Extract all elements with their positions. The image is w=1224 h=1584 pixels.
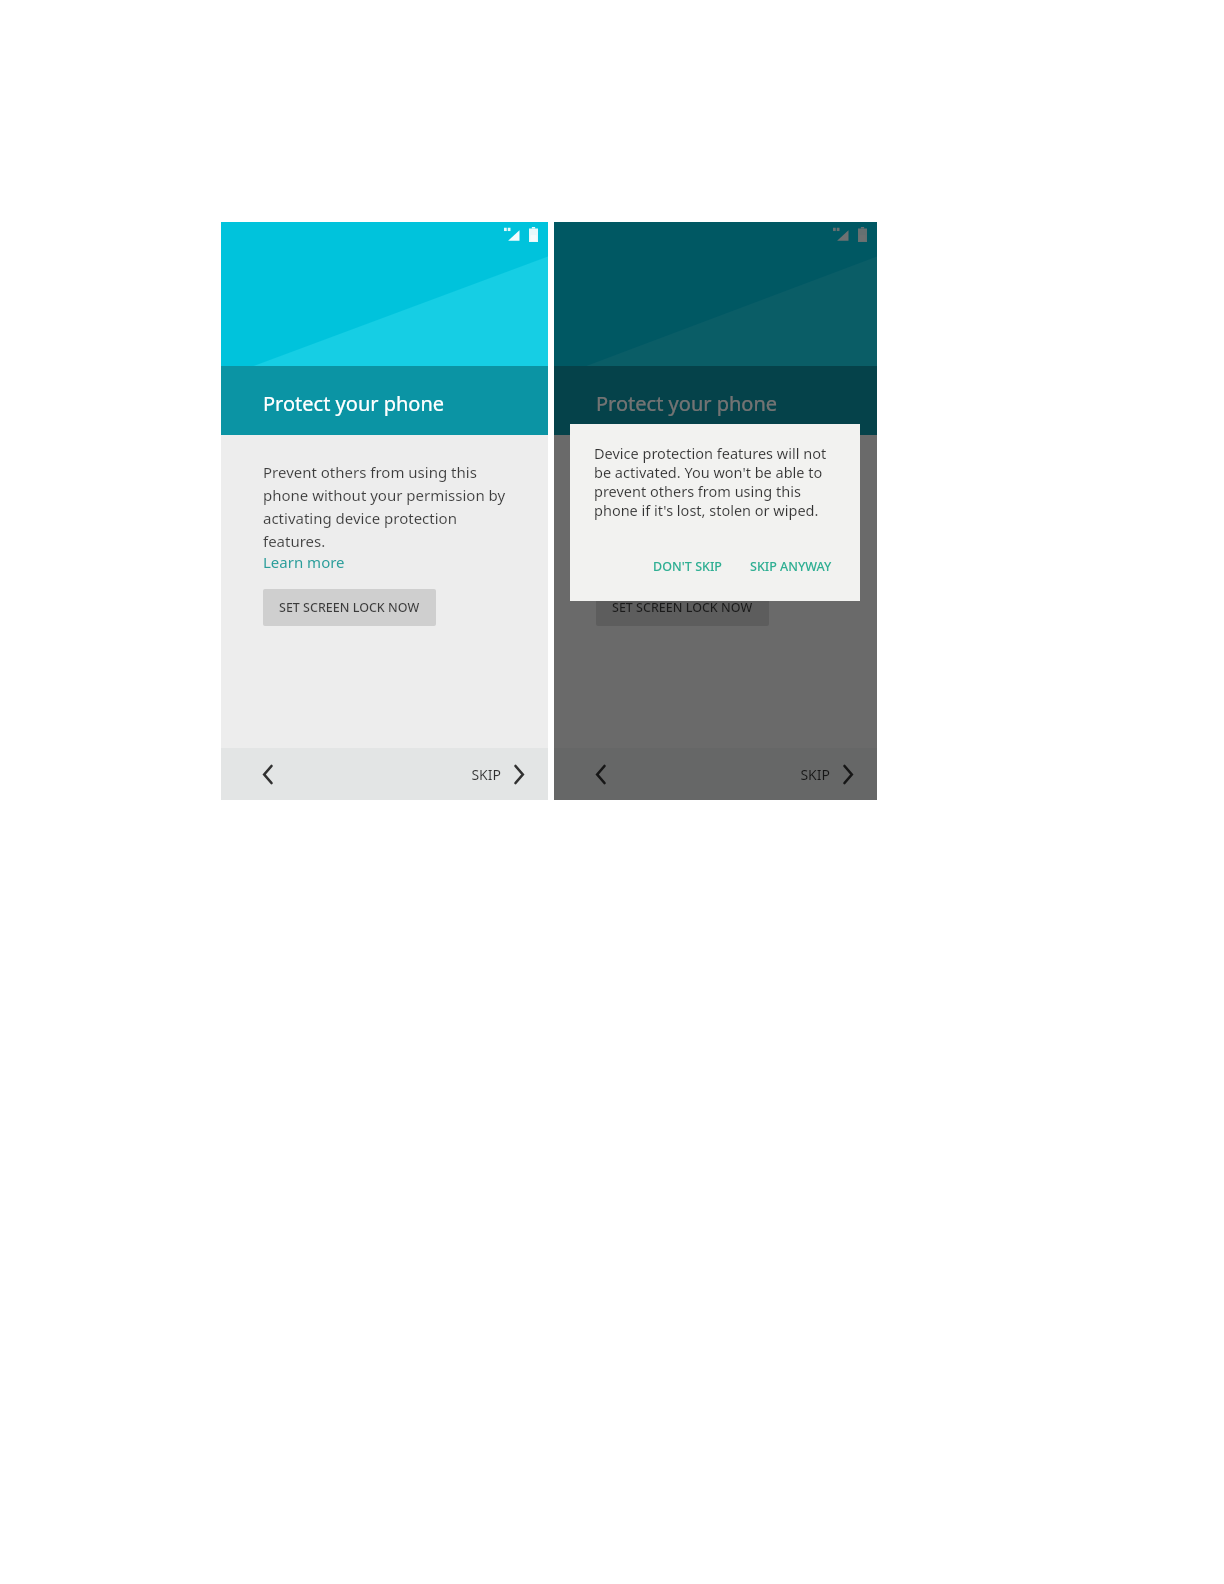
button[interactable]: SKIP [459,757,548,792]
button[interactable]: SKIP [788,757,877,792]
staticText: Protect your phone [263,390,445,417]
button[interactable]: Learn more [263,552,345,572]
staticText: SET SCREEN LOCK NOW [612,599,753,616]
button[interactable]: SKIP ANYWAY [744,554,838,579]
button[interactable]: Back [586,759,616,789]
staticText: SET SCREEN LOCK NOW [279,599,420,616]
button[interactable]: SET SCREEN LOCK NOW [263,589,436,626]
staticText: Learn more [596,552,678,572]
staticText: Device protection features will not be a… [594,443,840,521]
staticText: Prevent others from using this phone wit… [263,462,518,552]
button[interactable]: Back [253,759,283,789]
staticText: SKIP [471,765,501,784]
staticText: Prevent others from using this phone wit… [596,462,847,552]
staticText: Learn more [263,552,345,572]
button[interactable]: SET SCREEN LOCK NOW [596,589,769,626]
button[interactable]: Learn more [596,552,678,572]
staticText: SKIP ANYWAY [750,558,832,575]
button[interactable]: DON'T SKIP [647,554,728,579]
staticText: Protect your phone [596,390,778,417]
staticText: DON'T SKIP [653,558,722,575]
staticText: SKIP [800,765,830,784]
